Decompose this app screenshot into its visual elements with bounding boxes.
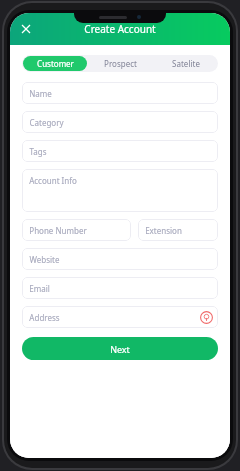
button[interactable]: Name (22, 82, 218, 104)
staticText: Phone Number (29, 225, 87, 236)
button[interactable]: Phone Number (22, 219, 131, 241)
staticText: Website (29, 254, 60, 265)
button[interactable]: Extension (138, 219, 218, 241)
staticText: Address (29, 312, 60, 323)
staticText: Tags (29, 146, 47, 157)
staticText: Create Account (84, 22, 156, 36)
button[interactable]: Address (22, 306, 218, 328)
button[interactable]: Customer (23, 56, 87, 71)
button[interactable]: Pick location on map (200, 311, 213, 324)
button[interactable]: Satelite (154, 56, 217, 71)
staticText: Next (110, 343, 130, 355)
staticText: Customer (37, 58, 74, 69)
button[interactable]: Email (22, 277, 218, 299)
staticText: Name (29, 88, 52, 99)
button[interactable]: Website (22, 248, 218, 270)
staticText: Account Info (29, 175, 77, 186)
button[interactable]: Tags (22, 140, 218, 162)
staticText: Extension (145, 225, 182, 236)
button[interactable]: Account Info (22, 169, 218, 212)
button[interactable]: Prospect (89, 56, 152, 71)
button[interactable]: Category (22, 111, 218, 133)
button[interactable]: Next (22, 337, 218, 360)
button[interactable]: Close (15, 18, 37, 40)
staticText: Category (29, 117, 64, 128)
staticText: Prospect (104, 58, 137, 69)
staticText: Email (29, 283, 50, 294)
staticText: Satelite (172, 58, 200, 69)
